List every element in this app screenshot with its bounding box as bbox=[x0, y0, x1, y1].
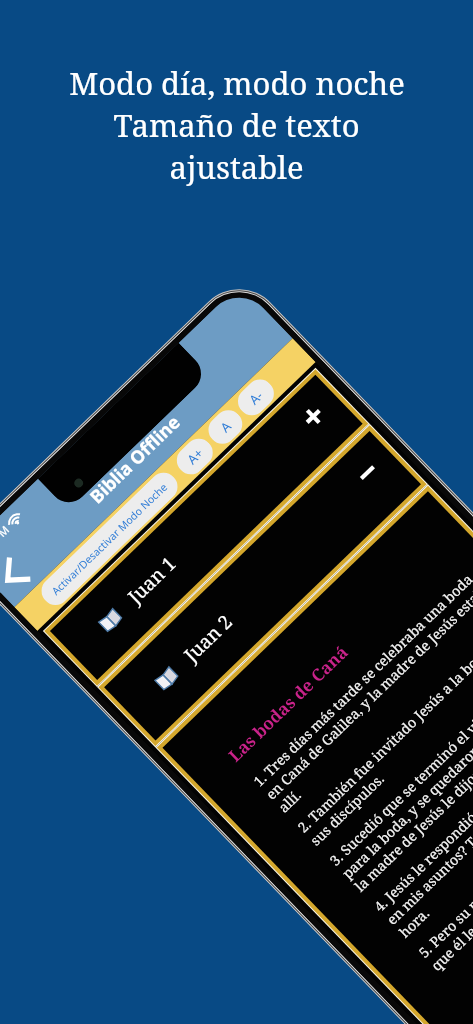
staticText: Tamaño de texto bbox=[113, 104, 360, 146]
button[interactable]: A bbox=[203, 404, 248, 449]
button[interactable]: Juan 2 bbox=[104, 431, 421, 740]
staticText: 3. Sucedió que se terminó el vino prepar… bbox=[325, 640, 473, 895]
other: Atrás bbox=[0, 558, 30, 591]
staticText: Juan 2 bbox=[178, 609, 238, 668]
button[interactable]: Activar/Desactivar Modo Noche bbox=[36, 467, 183, 611]
staticText: Las bodas de Caná bbox=[223, 640, 353, 767]
staticText: A bbox=[216, 417, 235, 436]
button[interactable]: Juan 1 bbox=[50, 375, 363, 680]
other: Expandir bbox=[301, 404, 325, 428]
button[interactable]: A- bbox=[232, 374, 280, 421]
staticText: 5. Pero su madre dijo a los sirvientes: … bbox=[414, 732, 473, 975]
staticText: ajustable bbox=[169, 146, 304, 188]
staticText: M bbox=[0, 522, 12, 540]
staticText: A- bbox=[245, 386, 267, 408]
staticText: Juan 1 bbox=[122, 550, 182, 609]
staticText: 2. También fue invitado Jesús a la boda … bbox=[293, 607, 473, 849]
staticText: A+ bbox=[183, 444, 207, 468]
staticText: Modo día, modo noche bbox=[69, 62, 405, 104]
staticText: 1. Tres días más tarde se celebraba una … bbox=[249, 561, 473, 816]
staticText: 4. Jesús le respondió: Mujer, ¿por qué t… bbox=[370, 686, 473, 941]
staticText: Biblia Offline bbox=[84, 410, 186, 509]
other: Contraer bbox=[355, 461, 379, 485]
button[interactable]: A+ bbox=[171, 433, 218, 480]
staticText: Activar/Desactivar Modo Noche bbox=[49, 480, 170, 598]
